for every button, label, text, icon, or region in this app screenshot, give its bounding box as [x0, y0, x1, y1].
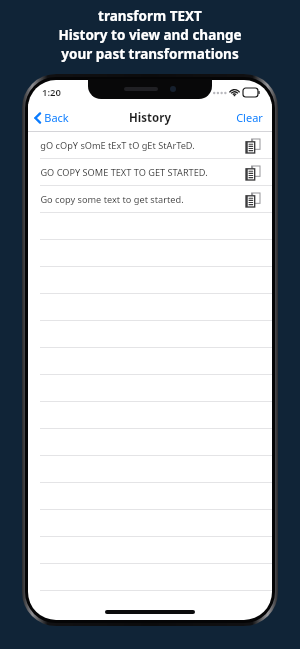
- button[interactable]: Copy text: [244, 164, 262, 182]
- button[interactable]: gO cOpY sOmE tExT tO gEt StArTeD.: [28, 132, 272, 159]
- staticText: your past transformations: [61, 45, 239, 63]
- button[interactable]: GO COPY SOME TEXT TO GET STARTED.: [28, 159, 272, 186]
- button[interactable]: Copy text: [244, 137, 262, 155]
- button[interactable]: Back: [28, 107, 77, 128]
- staticText: Clear: [236, 110, 263, 125]
- staticText: 1:20: [42, 86, 61, 99]
- staticText: History: [129, 110, 171, 126]
- button[interactable]: Copy text: [244, 191, 262, 209]
- staticText: Back: [44, 110, 69, 125]
- staticText: transform TEXT: [98, 7, 202, 25]
- button[interactable]: Clear: [227, 106, 272, 129]
- button[interactable]: Go copy some text to get started.: [28, 186, 272, 213]
- staticText: History to view and change: [58, 26, 242, 44]
- staticText: Go copy some text to get started.: [40, 193, 184, 206]
- staticText: gO cOpY sOmE tExT tO gEt StArTeD.: [40, 139, 195, 152]
- staticText: GO COPY SOME TEXT TO GET STARTED.: [40, 166, 208, 179]
